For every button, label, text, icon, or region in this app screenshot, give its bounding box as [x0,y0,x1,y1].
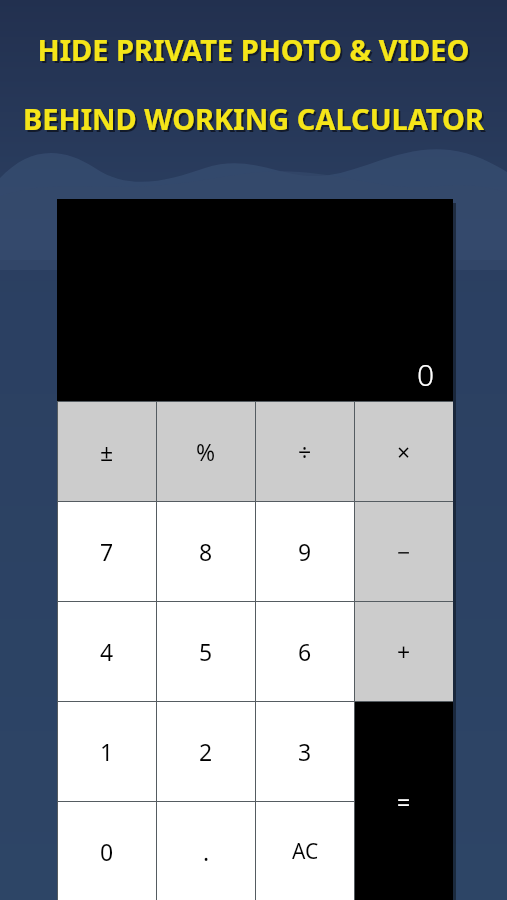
staticText: BEHIND WORKING CALCULATOR [2,101,507,140]
button[interactable]: 2 [157,702,255,801]
staticText: ± [100,436,114,467]
staticText: 7 [100,536,114,567]
button[interactable]: 3 [256,702,354,801]
button[interactable]: × [355,402,453,501]
staticText: 5 [199,636,213,667]
staticText: × [397,436,411,467]
staticText: 6 [298,636,312,667]
staticText: ÷ [298,436,312,467]
staticText: HIDE PRIVATE PHOTO & VIDEO [0,30,507,69]
button[interactable]: . [157,802,255,900]
button[interactable]: % [157,402,255,501]
button[interactable]: ± [58,402,156,501]
staticText: 1 [100,736,114,767]
button[interactable]: 9 [256,502,354,601]
button[interactable]: 6 [256,602,354,701]
staticText: 9 [298,536,312,567]
button[interactable]: 5 [157,602,255,701]
button[interactable]: 8 [157,502,255,601]
button[interactable]: 0 [58,802,156,900]
button[interactable]: + [355,602,453,701]
staticText: AC [292,837,319,866]
staticText: HIDE PRIVATE PHOTO & VIDEO [2,32,507,71]
button[interactable]: ÷ [256,402,354,501]
staticText: 8 [199,536,213,567]
button[interactable]: 7 [58,502,156,601]
staticText: 0 [100,836,114,867]
button[interactable]: 1 [58,702,156,801]
staticText: 2 [199,736,213,767]
staticText: − [397,536,411,567]
button[interactable]: = [355,702,453,900]
button[interactable]: 4 [58,602,156,701]
staticText: BEHIND WORKING CALCULATOR [0,99,507,138]
staticText: % [196,436,216,467]
staticText: + [397,636,411,667]
button[interactable]: AC [256,802,354,900]
staticText: = [397,786,411,817]
staticText: . [203,836,210,867]
staticText: 4 [100,636,114,667]
button[interactable]: − [355,502,453,601]
staticText: 0 [417,354,435,395]
staticText: 3 [298,736,312,767]
